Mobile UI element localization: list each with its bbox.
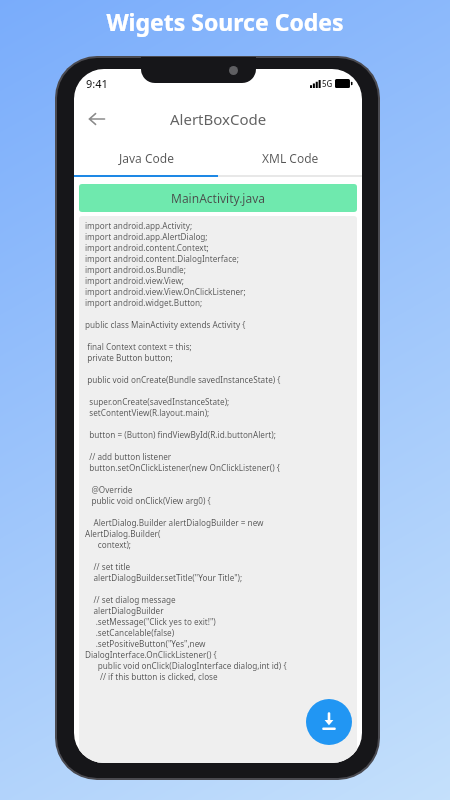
staticText: super.onCreate(savedInstanceState); <box>85 396 230 407</box>
button[interactable]: Java Code <box>74 141 218 175</box>
staticText: button.setOnClickListener(new OnClickLis… <box>85 462 280 473</box>
staticText: private Button button; <box>85 352 173 363</box>
staticText: import android.app.AlertDialog; <box>85 231 208 242</box>
staticText: // add button listener <box>85 451 172 462</box>
staticText: // if this button is clicked, close <box>85 671 218 682</box>
staticText: .setCancelable(false) <box>85 627 175 638</box>
staticText: public class MainActivity extends Activi… <box>85 319 246 330</box>
staticText: AlertBoxCode <box>170 109 267 129</box>
staticText: button = (Button) findViewById(R.id.butt… <box>85 429 276 440</box>
staticText: @Override <box>85 484 133 495</box>
staticText: Wigets Source Codes <box>106 6 344 37</box>
staticText: import android.view.View.OnClickListener… <box>85 286 246 297</box>
staticText: // set dialog message <box>85 594 176 605</box>
staticText: public void onCreate(Bundle savedInstanc… <box>85 374 281 385</box>
staticText: import android.content.DialogInterface; <box>85 253 239 264</box>
staticText: setContentView(R.layout.main); <box>85 407 210 418</box>
staticText: XML Code <box>262 150 319 166</box>
staticText: final Context context = this; <box>85 341 192 352</box>
staticText: .setPositiveButton("Yes",new <box>85 638 206 649</box>
staticText: alertDialogBuilder <box>85 605 164 616</box>
staticText: // set title <box>85 561 131 572</box>
staticText: alertDialogBuilder.setTitle("Your Title"… <box>85 572 243 583</box>
staticText: context); <box>85 539 132 550</box>
staticText: Java Code <box>119 150 174 166</box>
staticText: import android.widget.Button; <box>85 297 203 308</box>
staticText: import android.view.View; <box>85 275 185 286</box>
staticText: import android.os.Bundle; <box>85 264 186 275</box>
staticText: public void onClick(DialogInterface dial… <box>85 660 287 671</box>
staticText: MainActivity.java <box>171 190 266 206</box>
staticText: public void onClick(View arg0) { <box>85 495 211 506</box>
staticText: 5G <box>322 78 333 89</box>
button[interactable]: Download <box>306 699 352 745</box>
staticText: import android.app.Activity; <box>85 220 193 231</box>
button[interactable]: XML Code <box>218 141 362 175</box>
staticText: 9:41 <box>86 76 108 91</box>
staticText: AlertDialog.Builder alertDialogBuilder =… <box>85 517 264 528</box>
staticText: DialogInterface.OnClickListener() { <box>85 649 217 660</box>
staticText: import android.content.Context; <box>85 242 209 253</box>
button[interactable]: Back <box>80 102 114 136</box>
staticText: .setMessage("Click yes to exit!") <box>85 616 216 627</box>
staticText: AlertDialog.Builder( <box>85 528 161 539</box>
